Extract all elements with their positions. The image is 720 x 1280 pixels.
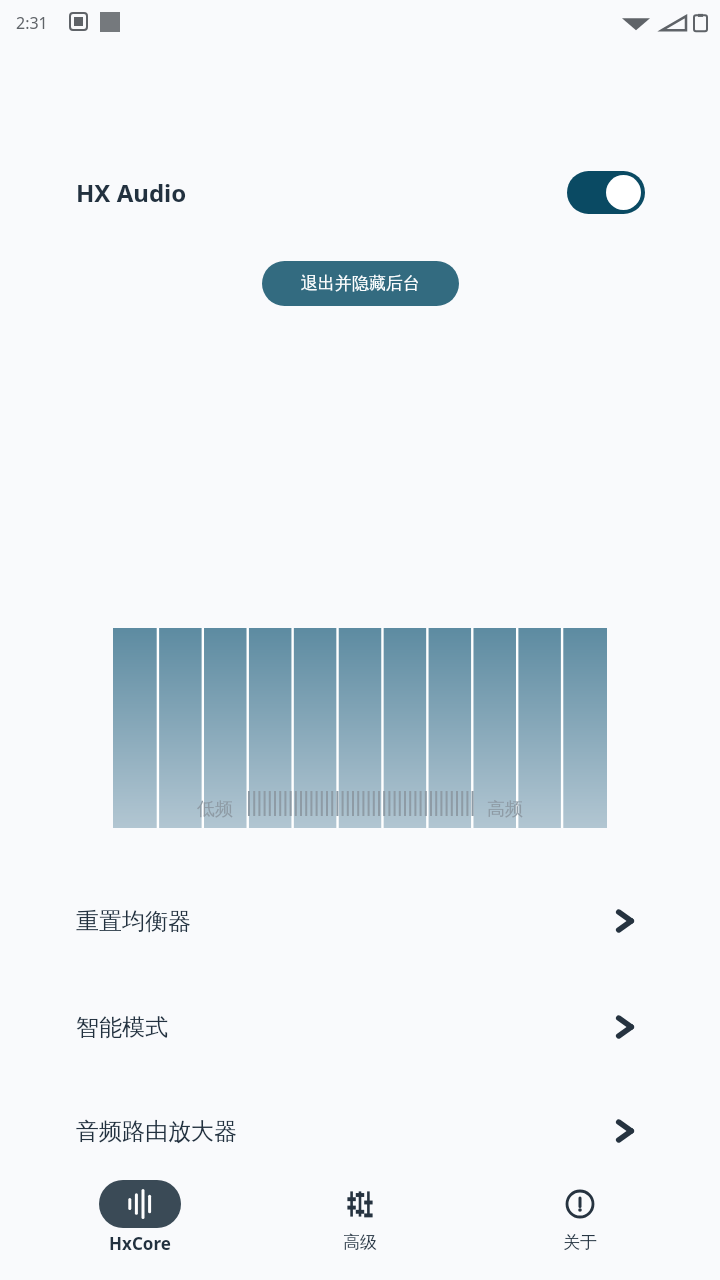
button[interactable]: 低频: [113, 628, 607, 828]
staticText: 退出并隐藏后台: [301, 273, 420, 294]
button[interactable]: 音频路由放大器: [0, 1088, 720, 1174]
staticText: 音频路由放大器: [76, 1117, 237, 1146]
other: 高级: [345, 1189, 375, 1219]
staticText: HxCore: [109, 1232, 171, 1255]
button[interactable]: 智能模式: [0, 984, 720, 1070]
button[interactable]: 关于: [500, 1170, 660, 1253]
button[interactable]: 重置均衡器: [0, 878, 720, 964]
staticText: 重置均衡器: [76, 907, 191, 936]
staticText: 高频: [487, 798, 523, 821]
staticText: 低频: [197, 798, 233, 821]
staticText: 高级: [343, 1232, 377, 1253]
button[interactable]: 高级: [280, 1170, 440, 1253]
button[interactable]: HX Audio toggle, on: [567, 171, 645, 214]
other: HxCore: [125, 1189, 155, 1219]
other: 关于: [565, 1189, 595, 1219]
staticText: 智能模式: [76, 1013, 168, 1042]
button[interactable]: HxCore: [60, 1170, 220, 1255]
staticText: 2:31: [16, 12, 48, 34]
staticText: HX Audio: [76, 176, 187, 209]
button[interactable]: 退出并隐藏后台: [262, 261, 459, 306]
staticText: 关于: [563, 1232, 597, 1253]
